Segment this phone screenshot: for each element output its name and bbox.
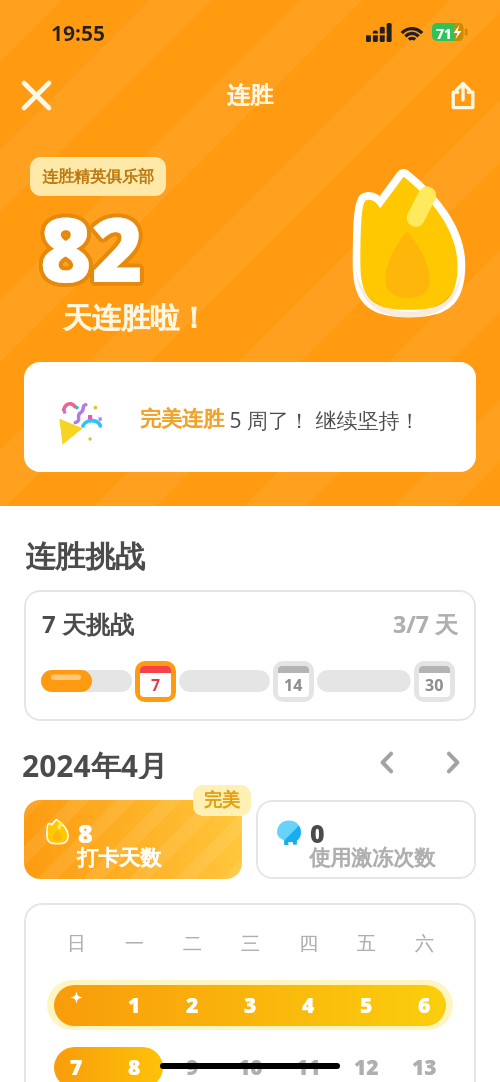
staticText: 82: [43, 191, 147, 311]
staticText: 天连胜啦！: [63, 300, 208, 337]
staticText: 82: [43, 185, 147, 305]
staticText: 5 周了！: [224, 406, 310, 435]
button[interactable]: 14: [273, 661, 314, 702]
staticText: 82: [44, 189, 148, 309]
button[interactable]: 8: [24, 800, 242, 879]
staticText: 82: [37, 191, 141, 311]
staticText: 打卡天数: [77, 845, 161, 871]
staticText: 19:55: [51, 19, 105, 48]
staticText: 82: [40, 188, 144, 308]
staticText: 六: [415, 932, 434, 956]
staticText: 2: [186, 991, 199, 1020]
staticText: 1: [128, 991, 141, 1020]
staticText: 一: [125, 932, 144, 956]
staticText: 82: [38, 191, 142, 311]
staticText: 71: [436, 24, 453, 43]
staticText: 0: [310, 816, 325, 850]
staticText: 5: [360, 991, 373, 1020]
staticText: 4: [302, 991, 315, 1020]
staticText: 2024年4月: [22, 745, 168, 779]
staticText: 9: [186, 1053, 199, 1082]
button[interactable]: Next month: [431, 745, 473, 779]
staticText: 连胜挑战: [25, 538, 145, 576]
staticText: 82: [41, 192, 145, 312]
staticText: 82: [38, 185, 142, 305]
staticText: 8: [128, 1053, 141, 1082]
button[interactable]: 7: [135, 661, 176, 702]
staticText: 82: [42, 191, 146, 311]
staticText: 日: [67, 932, 86, 956]
staticText: 四: [299, 932, 318, 956]
button[interactable]: Close: [13, 72, 59, 118]
staticText: 连胜: [227, 81, 273, 110]
staticText: 完美: [204, 789, 240, 812]
staticText: 五: [357, 932, 376, 956]
staticText: 11: [296, 1053, 321, 1082]
staticText: 7: [70, 1053, 83, 1082]
staticText: 使用激冻次数: [309, 845, 435, 871]
button[interactable]: Previous month: [366, 745, 408, 779]
staticText: 82: [42, 185, 146, 305]
staticText: 7 天挑战: [42, 607, 134, 640]
staticText: 3: [244, 991, 257, 1020]
staticText: 82: [44, 188, 148, 308]
staticText: 82: [37, 185, 141, 305]
staticText: 82: [44, 187, 148, 307]
staticText: 82: [36, 189, 140, 309]
staticText: 10: [238, 1053, 263, 1082]
staticText: 完美连胜: [140, 406, 224, 432]
staticText: 三: [241, 932, 260, 956]
staticText: 7: [151, 674, 161, 696]
staticText: 6: [418, 991, 431, 1020]
staticText: 连胜精英俱乐部: [42, 167, 154, 187]
button[interactable]: 7 天挑战: [24, 590, 476, 721]
staticText: 30: [425, 674, 444, 696]
button[interactable]: 完美连胜: [24, 362, 476, 472]
staticText: 82: [41, 184, 145, 304]
button[interactable]: 30: [414, 661, 455, 702]
staticText: 二: [183, 932, 202, 956]
staticText: 13: [412, 1053, 437, 1082]
staticText: 82: [36, 187, 140, 307]
button[interactable]: Share: [440, 72, 486, 118]
staticText: 3/7 天: [393, 608, 458, 639]
staticText: 14: [284, 674, 303, 696]
button[interactable]: 连胜精英俱乐部: [30, 157, 166, 196]
staticText: 继续坚持！: [310, 406, 421, 435]
staticText: 82: [39, 192, 143, 312]
staticText: 82: [36, 188, 140, 308]
staticText: 12: [354, 1053, 379, 1082]
staticText: 8: [78, 816, 93, 850]
button[interactable]: 0: [256, 800, 476, 879]
staticText: 82: [39, 184, 143, 304]
